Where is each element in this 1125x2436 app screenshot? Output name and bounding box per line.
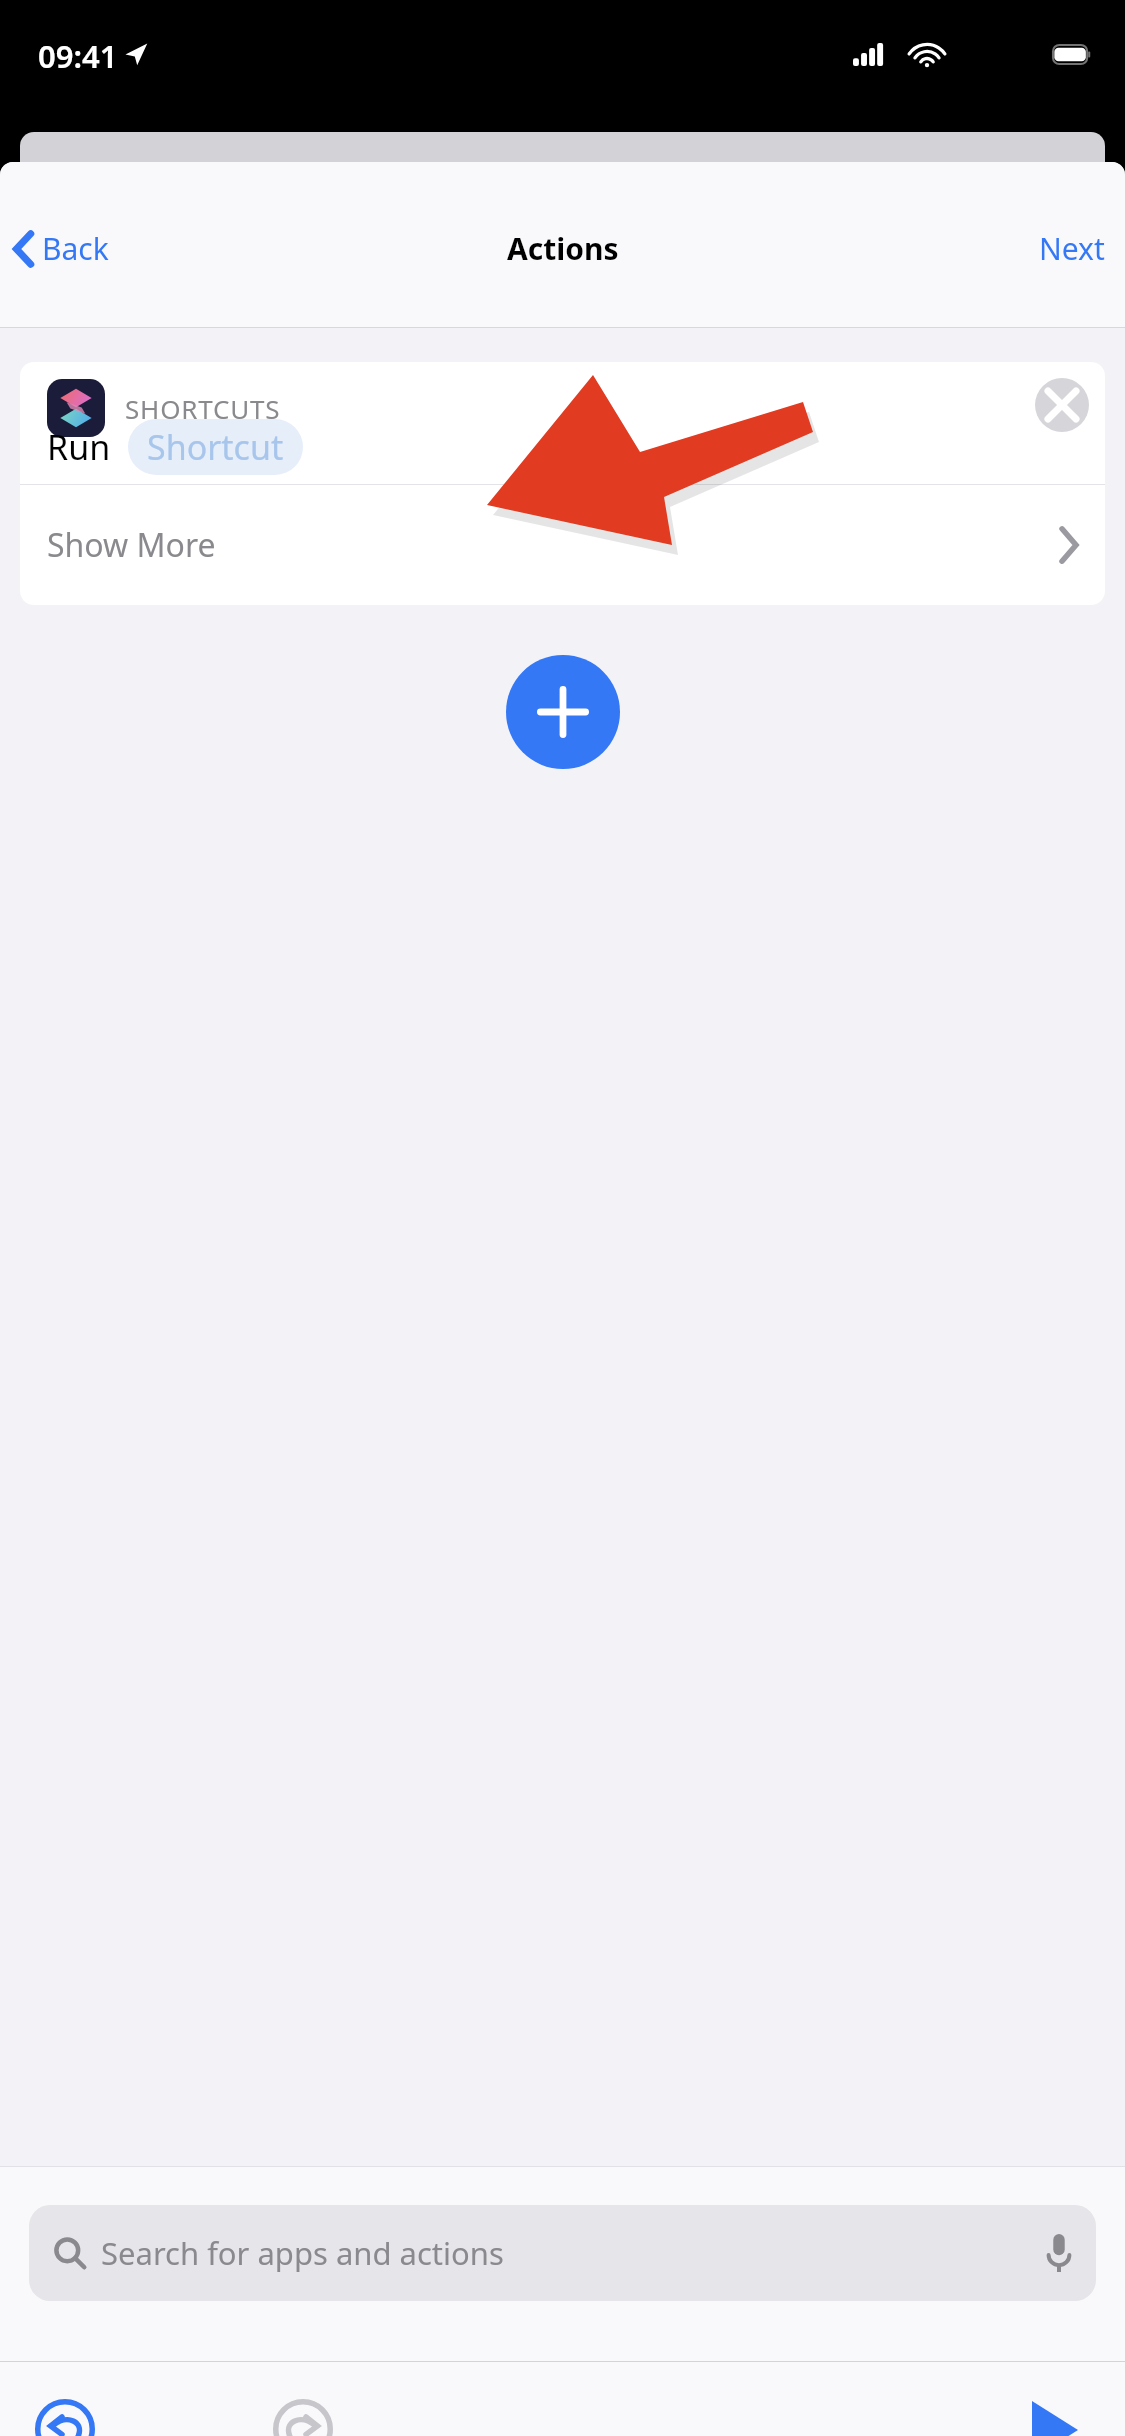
button[interactable]: Shortcut bbox=[128, 419, 303, 475]
button[interactable]: Undo bbox=[26, 2390, 104, 2436]
button[interactable]: Redo bbox=[264, 2390, 342, 2436]
staticText: Search for apps and actions bbox=[101, 2232, 504, 2274]
button[interactable]: Next bbox=[1019, 220, 1125, 277]
staticText: Back bbox=[42, 228, 109, 269]
button[interactable]: SHORTCUTS bbox=[20, 362, 1105, 484]
button[interactable]: Back bbox=[0, 220, 123, 277]
staticText: SHORTCUTS bbox=[125, 391, 281, 426]
button[interactable]: Add action bbox=[506, 655, 620, 769]
staticText: Next bbox=[1039, 228, 1105, 269]
staticText: Actions bbox=[507, 228, 619, 269]
button[interactable]: Run shortcut bbox=[1013, 2388, 1097, 2436]
staticText: Run bbox=[47, 424, 111, 470]
button[interactable]: Show More bbox=[20, 485, 1105, 605]
button[interactable]: Search for apps and actions bbox=[29, 2205, 1096, 2301]
staticText: 09:41 bbox=[38, 35, 118, 77]
staticText: Shortcut bbox=[147, 424, 284, 470]
staticText: Show More bbox=[47, 523, 216, 567]
button[interactable]: Remove action bbox=[1035, 378, 1089, 432]
